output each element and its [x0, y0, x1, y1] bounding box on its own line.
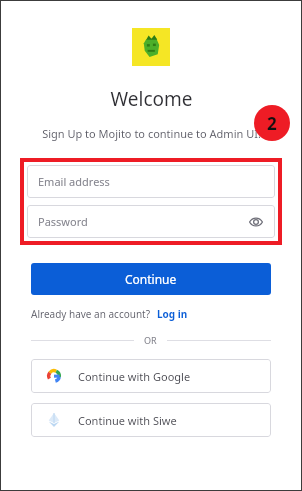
staticText: Welcome [110, 86, 193, 112]
staticText: Continue with Google [78, 369, 191, 384]
button[interactable]: Show password [248, 214, 264, 230]
button[interactable]: Password [27, 205, 275, 238]
staticText: Continue [125, 271, 177, 287]
staticText: 2 [267, 112, 277, 135]
button[interactable]: Continue with Google [31, 359, 271, 393]
button[interactable]: Continue [31, 263, 271, 295]
staticText: OR [144, 334, 157, 346]
button[interactable]: Email address [27, 165, 275, 198]
staticText: Continue with Siwe [78, 413, 177, 428]
staticText: Sign Up to Mojito to continue to Admin U… [42, 126, 261, 141]
staticText: Password [38, 214, 248, 229]
button[interactable]: Log in [157, 307, 188, 321]
button[interactable]: Continue with Siwe [31, 403, 271, 437]
other: Annotation step 2 [254, 105, 290, 141]
staticText: Email address [38, 174, 264, 189]
staticText: Log in [157, 307, 188, 321]
staticText: Already have an account? [31, 307, 151, 321]
